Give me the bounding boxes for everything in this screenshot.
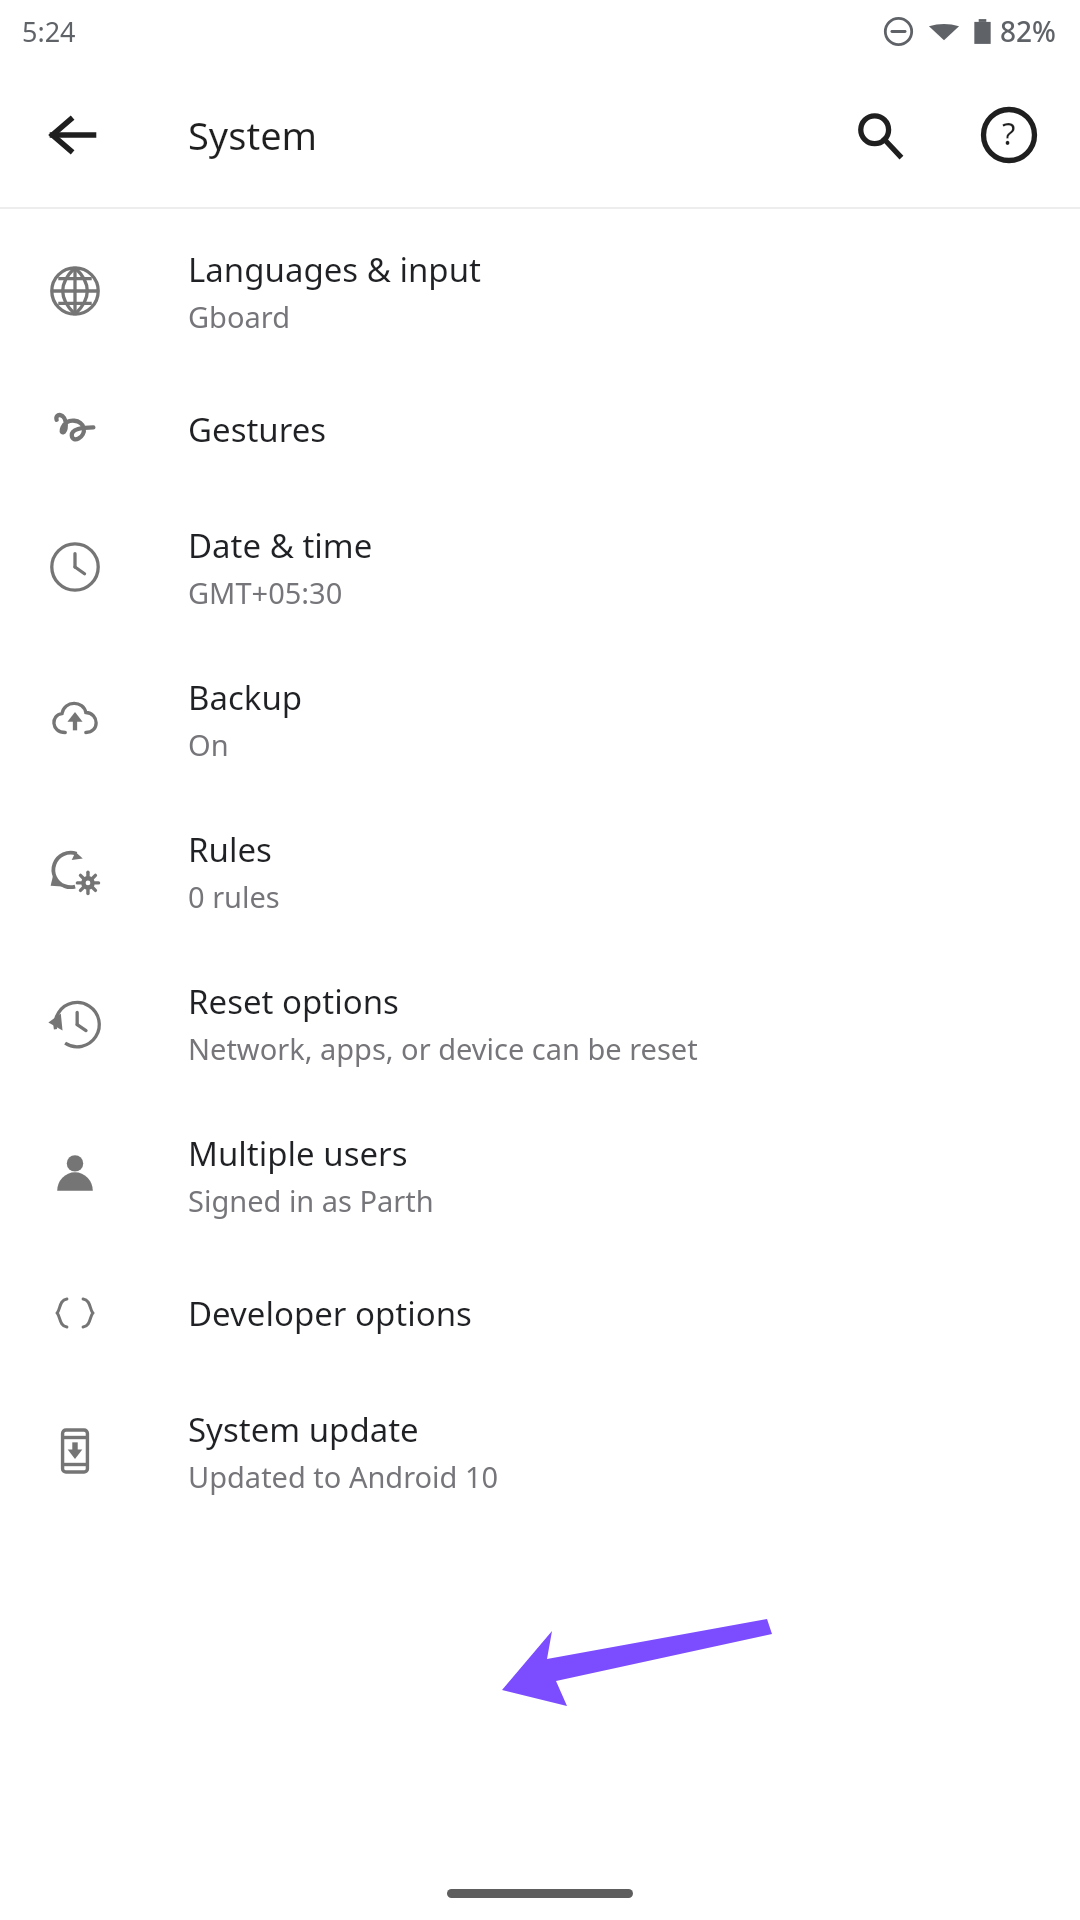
staticText: 0 rules (188, 877, 280, 916)
staticText: Updated to Android 10 (188, 1457, 499, 1496)
staticText: Gboard (188, 297, 290, 336)
staticText: Reset options (188, 979, 399, 1024)
staticText: Gestures (188, 407, 327, 452)
staticText: 5:24 (22, 13, 76, 50)
staticText: Languages & input (188, 247, 481, 292)
button[interactable]: Multiple users (0, 1099, 1080, 1251)
button[interactable]: Rules (0, 795, 1080, 947)
staticText: GMT+05:30 (188, 573, 343, 612)
staticText: Signed in as Parth (188, 1181, 434, 1220)
staticText: Rules (188, 827, 272, 872)
button[interactable]: System update (0, 1375, 1080, 1527)
staticText: Backup (188, 675, 303, 720)
staticText: Network, apps, or device can be reset (188, 1029, 698, 1068)
staticText: ? (1002, 112, 1016, 154)
staticText: 82% (1000, 12, 1056, 50)
staticText: System (188, 109, 318, 161)
button[interactable]: Developer options (0, 1251, 1080, 1375)
button[interactable]: Back (26, 88, 120, 182)
staticText: Multiple users (188, 1131, 408, 1176)
button[interactable]: Help (962, 88, 1056, 182)
button[interactable]: Reset options (0, 947, 1080, 1099)
button[interactable]: Languages & input (0, 215, 1080, 367)
button[interactable]: Date & time (0, 491, 1080, 643)
button[interactable]: Gestures (0, 367, 1080, 491)
staticText: Date & time (188, 523, 373, 568)
staticText: Developer options (188, 1291, 472, 1336)
button[interactable]: Backup (0, 643, 1080, 795)
button[interactable]: Search (832, 88, 926, 182)
staticText: System update (188, 1407, 419, 1452)
staticText: On (188, 725, 229, 764)
